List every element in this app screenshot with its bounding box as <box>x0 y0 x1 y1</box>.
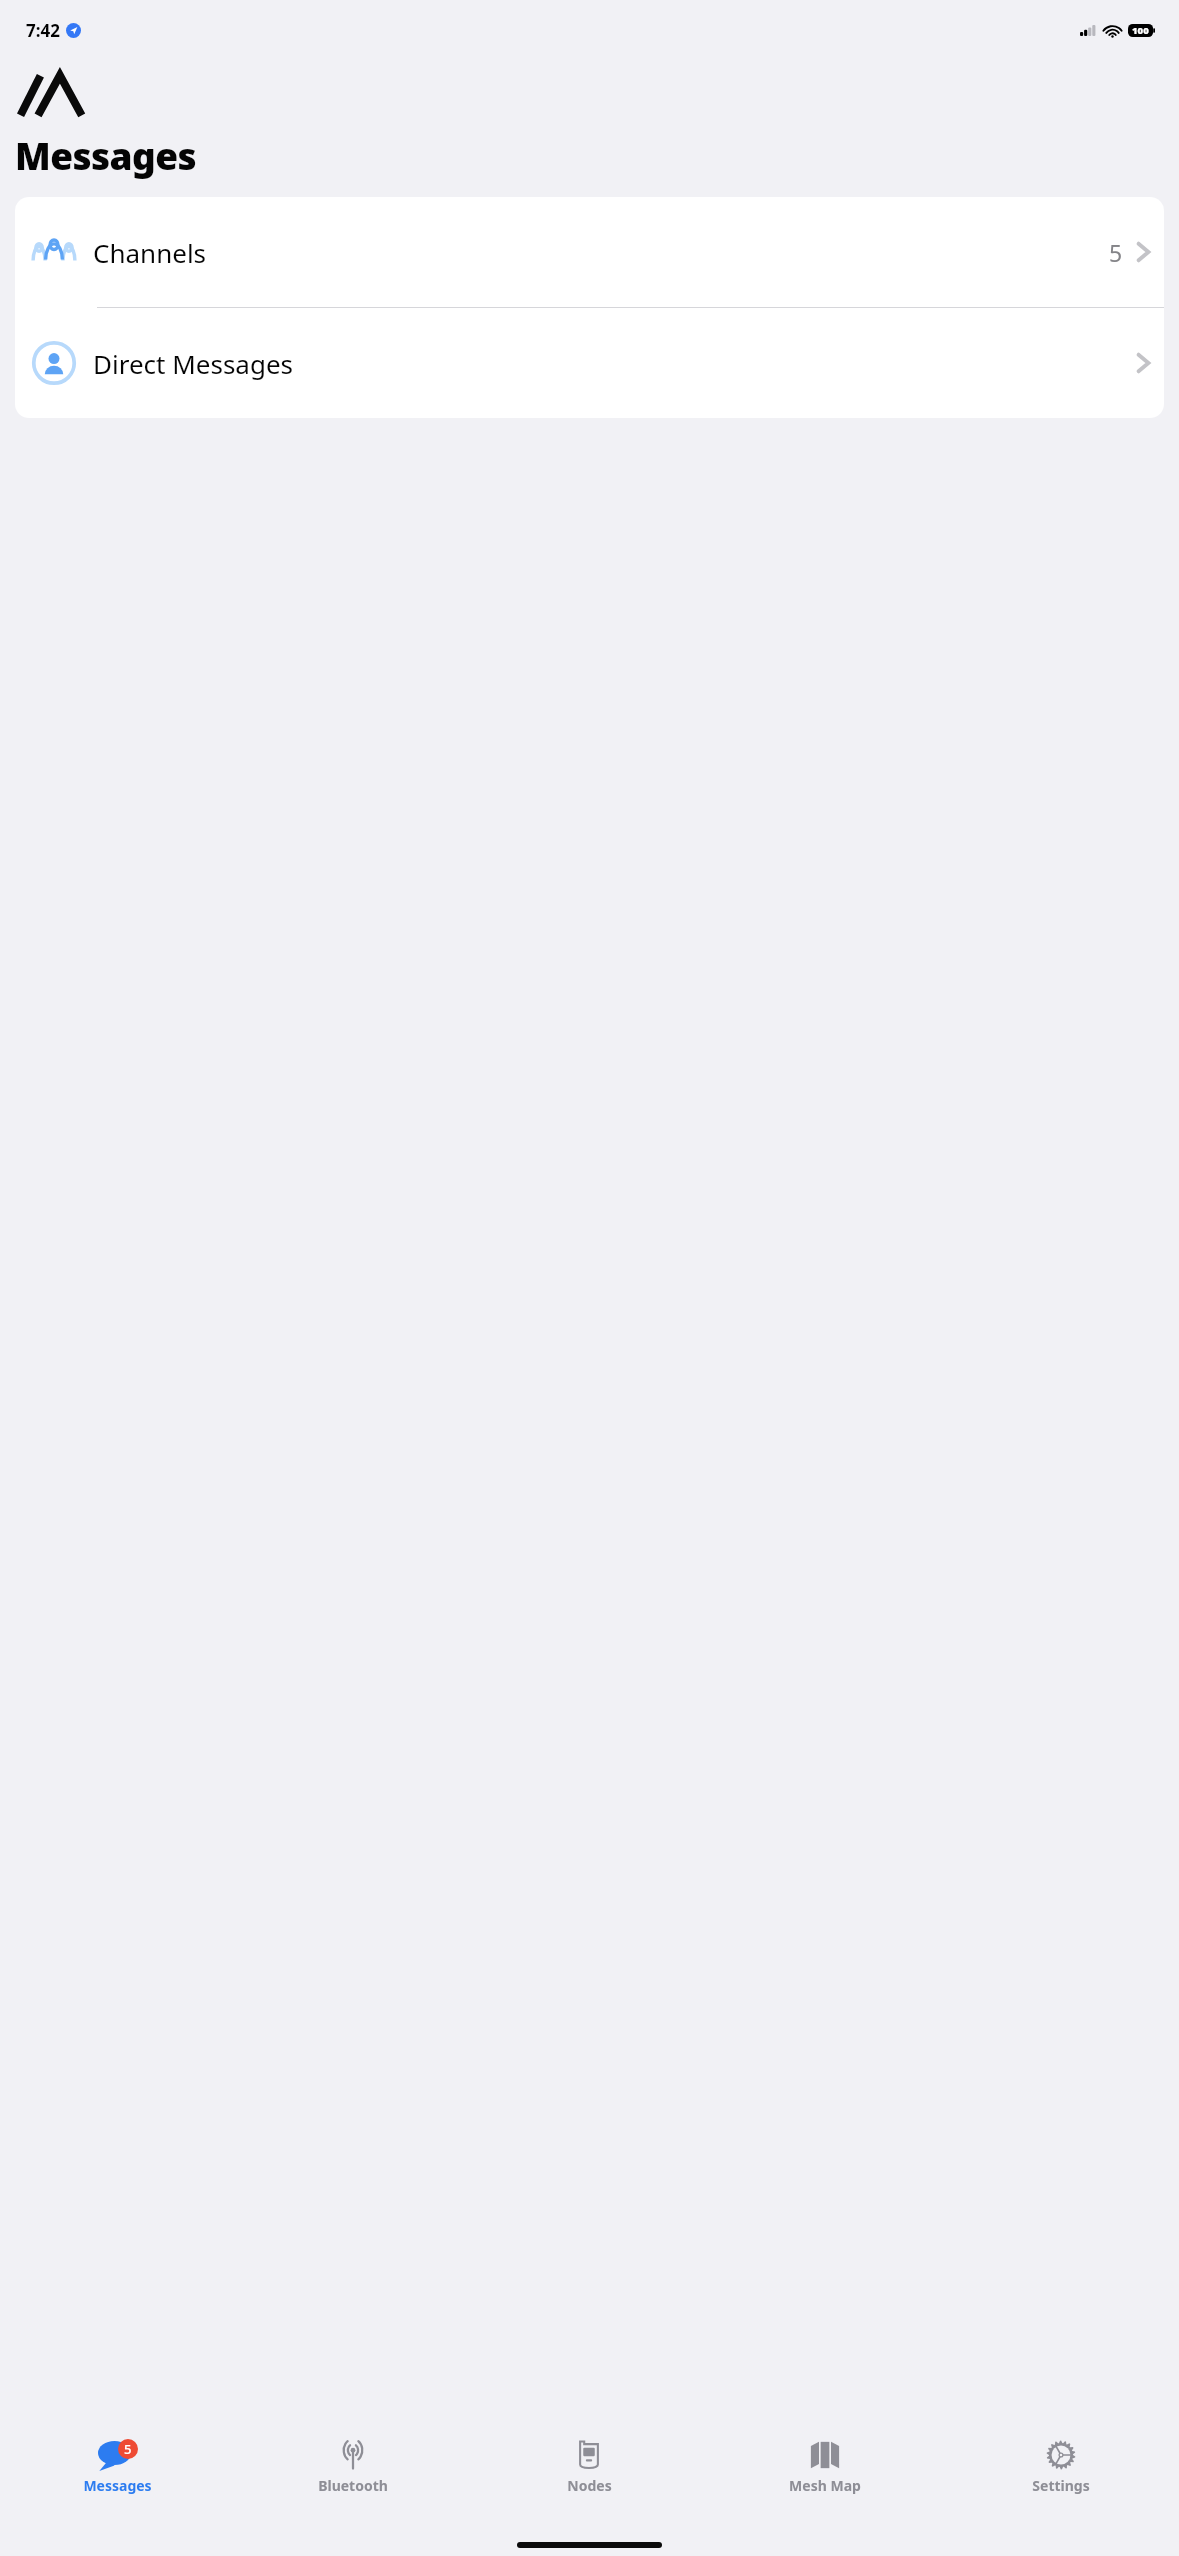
staticText: Messages <box>15 130 196 180</box>
staticText: Nodes <box>567 2476 612 2495</box>
button[interactable]: Nodes <box>471 2432 707 2522</box>
staticText: Bluetooth <box>318 2476 388 2495</box>
button[interactable]: Settings <box>943 2432 1179 2522</box>
staticText: Mesh Map <box>789 2476 861 2495</box>
other: Mesh Map <box>810 2441 840 2469</box>
staticText: Direct Messages <box>93 346 294 381</box>
staticText: Channels <box>93 235 207 270</box>
button[interactable]: Direct Messages <box>15 308 1164 418</box>
button[interactable]: Mesh Map <box>707 2432 943 2522</box>
button[interactable]: Bluetooth <box>235 2432 471 2522</box>
button[interactable]: 5 <box>0 2432 235 2522</box>
staticText: 100 <box>1132 24 1149 37</box>
other: Nodes <box>577 2439 601 2471</box>
staticText: 5 <box>124 2440 132 2458</box>
staticText: 5 <box>1109 237 1123 268</box>
button[interactable]: Channels <box>15 197 1164 307</box>
staticText: 7:42 <box>26 19 60 42</box>
staticText: Settings <box>1032 2476 1090 2495</box>
staticText: Messages <box>83 2476 152 2495</box>
other: Bluetooth <box>338 2440 368 2470</box>
other: Settings <box>1046 2440 1076 2470</box>
